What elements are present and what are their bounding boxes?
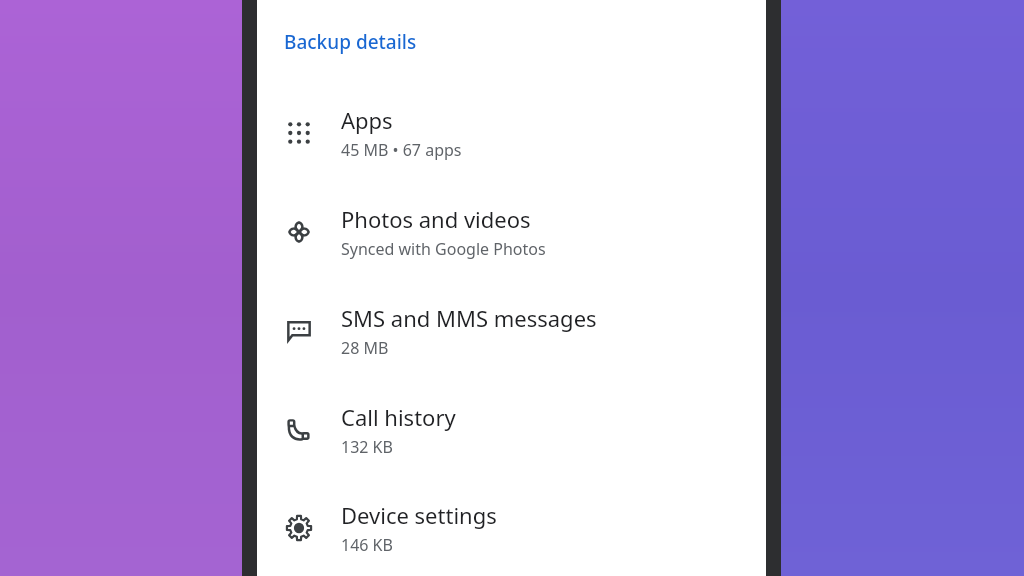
button[interactable]: Backup details	[257, 29, 766, 55]
staticText: Photos and videos	[341, 204, 531, 234]
other: SMS and MMS messages	[286, 318, 312, 344]
staticText: Apps	[341, 105, 393, 135]
other: Call history	[286, 417, 312, 443]
staticText: 132 KB	[341, 436, 393, 458]
other: Device settings	[286, 515, 312, 541]
staticText: SMS and MMS messages	[341, 303, 597, 333]
staticText: Device settings	[341, 500, 497, 530]
button[interactable]: Call history	[257, 380, 766, 479]
staticText: 28 MB	[341, 337, 389, 359]
staticText: 146 KB	[341, 534, 393, 556]
staticText: Call history	[341, 402, 456, 432]
other: Photos and videos	[286, 219, 312, 245]
button[interactable]: Device settings	[257, 479, 766, 576]
button[interactable]: SMS and MMS messages	[257, 281, 766, 380]
other: Apps	[286, 120, 312, 146]
staticText: Backup details	[284, 29, 417, 55]
staticText: Synced with Google Photos	[341, 238, 546, 260]
button[interactable]: Apps	[257, 83, 766, 182]
staticText: 45 MB • 67 apps	[341, 139, 462, 161]
button[interactable]: Photos and videos	[257, 182, 766, 281]
